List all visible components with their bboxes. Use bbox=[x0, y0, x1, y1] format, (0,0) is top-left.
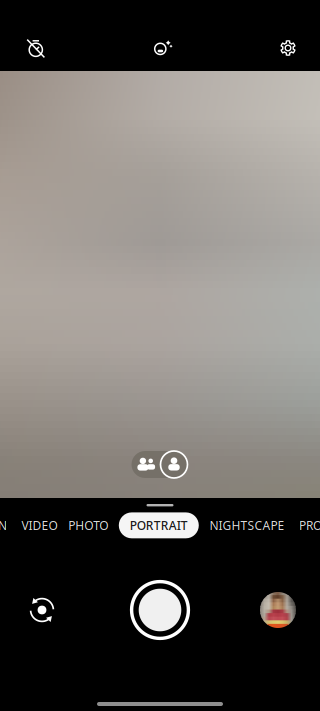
button[interactable]: Single portrait bbox=[159, 451, 188, 478]
button[interactable]: Settings bbox=[265, 26, 311, 70]
staticText: PRO bbox=[299, 517, 320, 533]
button[interactable]: Take photo bbox=[130, 580, 190, 640]
staticText: VIDEO bbox=[22, 517, 58, 533]
button[interactable]: N bbox=[0, 512, 7, 538]
button[interactable]: Switch camera bbox=[20, 588, 64, 632]
button[interactable]: PRO bbox=[299, 512, 320, 538]
staticText: NIGHTSCAPE bbox=[209, 517, 284, 533]
button[interactable]: Timer off bbox=[13, 26, 59, 70]
button[interactable]: NIGHTSCAPE bbox=[209, 512, 284, 538]
staticText: PHOTO bbox=[68, 517, 108, 533]
button[interactable]: PORTRAIT bbox=[119, 512, 199, 538]
button[interactable]: Open photo library bbox=[256, 588, 300, 632]
button[interactable]: Auto enhance bbox=[139, 26, 185, 70]
button[interactable]: Group portrait bbox=[131, 451, 159, 477]
button[interactable]: PHOTO bbox=[68, 512, 108, 538]
button[interactable]: VIDEO bbox=[22, 512, 58, 538]
staticText: PORTRAIT bbox=[130, 517, 188, 533]
staticText: N bbox=[0, 517, 7, 533]
